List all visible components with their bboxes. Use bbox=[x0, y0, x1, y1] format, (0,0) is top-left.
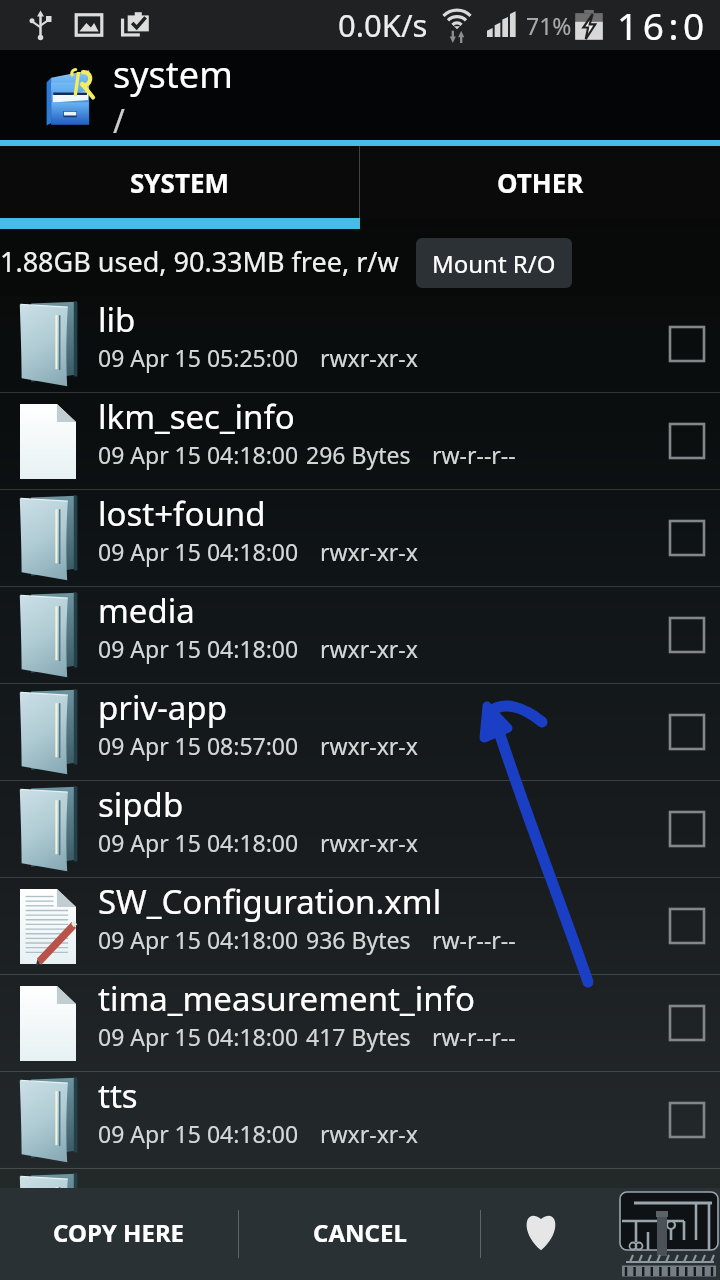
button[interactable]: lost+found bbox=[0, 490, 720, 586]
staticText: 09 Apr 15 04:18:00 bbox=[98, 536, 299, 567]
button[interactable]: Select SW_Configuration.xml bbox=[654, 893, 720, 959]
staticText: priv-app bbox=[98, 685, 227, 730]
staticText: rwxr-xr-x bbox=[320, 827, 418, 858]
button[interactable]: Select tts bbox=[654, 1087, 720, 1153]
staticText: sipdb bbox=[98, 782, 184, 827]
staticText: rwxr-xr-x bbox=[320, 633, 418, 664]
staticText: rwxr-xr-x bbox=[320, 730, 418, 761]
staticText: rwxr-xr-x bbox=[320, 536, 418, 567]
staticText: 09 Apr 15 05:25:00 bbox=[98, 342, 299, 373]
staticText: tima_measurement_info bbox=[98, 976, 475, 1021]
staticText: 09 Apr 15 04:18:00 bbox=[98, 1021, 299, 1052]
staticText: lost+found bbox=[98, 491, 266, 536]
staticText: 09 Apr 15 08:57:00 bbox=[98, 730, 299, 761]
staticText: rwxr-xr-x bbox=[320, 1118, 418, 1149]
staticText: 16:03 bbox=[617, 0, 720, 50]
staticText: OTHER bbox=[497, 165, 584, 200]
button[interactable]: SW_Configuration.xml bbox=[0, 878, 720, 974]
staticText: 936 Bytes bbox=[306, 924, 411, 955]
button[interactable]: Mount R/O bbox=[416, 238, 572, 288]
button[interactable]: OTHER bbox=[360, 146, 720, 218]
staticText: 09 Apr 15 04:18:00 bbox=[98, 1118, 299, 1149]
staticText: 71% bbox=[526, 10, 572, 41]
staticText: 09 Apr 15 04:18:00 bbox=[98, 924, 299, 955]
staticText: COPY HERE bbox=[53, 1216, 185, 1249]
button[interactable]: COPY HERE bbox=[0, 1188, 238, 1280]
staticText: CANCEL bbox=[313, 1216, 407, 1249]
button[interactable]: lib bbox=[0, 296, 720, 392]
button[interactable]: Select lkm_sec_info bbox=[654, 408, 720, 474]
button[interactable]: tts bbox=[0, 1072, 720, 1168]
staticText: 0.0K/s bbox=[338, 4, 428, 46]
button[interactable]: sipdb bbox=[0, 781, 720, 877]
staticText: rwxr-xr-x bbox=[320, 342, 418, 373]
button[interactable]: CANCEL bbox=[239, 1188, 480, 1280]
button[interactable]: SYSTEM bbox=[0, 146, 359, 218]
staticText: rw-r--r-- bbox=[432, 924, 516, 955]
button[interactable]: Favorites bbox=[481, 1188, 601, 1280]
staticText: rw-r--r-- bbox=[432, 1021, 516, 1052]
staticText: media bbox=[98, 588, 195, 633]
button[interactable]: Select tima_measurement_info bbox=[654, 990, 720, 1056]
button[interactable]: Select lost+found bbox=[654, 505, 720, 571]
staticText: SW_Configuration.xml bbox=[98, 879, 442, 924]
button[interactable]: Select sipdb bbox=[654, 796, 720, 862]
staticText: 09 Apr 15 04:18:00 bbox=[98, 827, 299, 858]
staticText: SYSTEM bbox=[130, 165, 230, 200]
button[interactable]: Select priv-app bbox=[654, 699, 720, 765]
button[interactable]: Select lib bbox=[654, 311, 720, 377]
button[interactable]: tima_measurement_info bbox=[0, 975, 720, 1071]
staticText: system bbox=[113, 50, 233, 99]
staticText: lib bbox=[98, 297, 136, 342]
staticText: lkm_sec_info bbox=[98, 394, 295, 439]
button[interactable]: lkm_sec_info bbox=[0, 393, 720, 489]
staticText: / bbox=[113, 99, 125, 140]
staticText: tts bbox=[98, 1073, 138, 1118]
staticText: 296 Bytes bbox=[306, 439, 411, 470]
button[interactable]: media bbox=[0, 587, 720, 683]
staticText: Mount R/O bbox=[432, 247, 556, 280]
staticText: rw-r--r-- bbox=[432, 439, 516, 470]
staticText: 417 Bytes bbox=[306, 1021, 411, 1052]
staticText: 09 Apr 15 04:18:00 bbox=[98, 439, 299, 470]
staticText: 1.88GB used, 90.33MB free, r/w bbox=[0, 243, 399, 280]
button[interactable]: Select media bbox=[654, 602, 720, 668]
button[interactable]: priv-app bbox=[0, 684, 720, 780]
staticText: 09 Apr 15 04:18:00 bbox=[98, 633, 299, 664]
